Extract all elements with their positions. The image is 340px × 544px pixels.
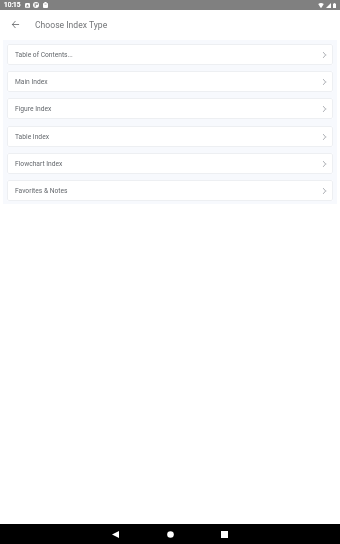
staticText: Table of Contents...	[15, 51, 73, 59]
staticText: 10:15	[4, 1, 21, 9]
button[interactable]: Home	[160, 524, 180, 544]
staticText: Figure Index	[15, 105, 52, 113]
button[interactable]: Navigate up	[4, 13, 27, 36]
button[interactable]: Favorites & Notes	[7, 180, 333, 201]
staticText: Main Index	[15, 78, 48, 86]
staticText: Favorites & Notes	[15, 187, 68, 195]
button[interactable]: Back	[105, 524, 125, 544]
button[interactable]: Figure Index	[7, 98, 333, 119]
button[interactable]: Flowchart Index	[7, 153, 333, 174]
staticText: Table Index	[15, 133, 49, 141]
button[interactable]: Table of Contents...	[7, 44, 333, 65]
button[interactable]: Recent apps	[214, 524, 234, 544]
staticText: Flowchart Index	[15, 160, 63, 168]
button[interactable]: Main Index	[7, 71, 333, 92]
button[interactable]: Table Index	[7, 126, 333, 147]
staticText: Choose Index Type	[35, 20, 108, 30]
